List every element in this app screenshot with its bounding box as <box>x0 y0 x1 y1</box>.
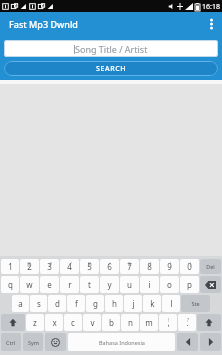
button[interactable]: j <box>124 295 142 312</box>
staticText: u <box>127 279 132 290</box>
staticText: a <box>18 298 23 309</box>
staticText: 6 <box>107 261 112 272</box>
button[interactable]: l <box>162 295 180 312</box>
staticText: , <box>167 317 170 328</box>
button[interactable]: m <box>140 314 158 331</box>
button[interactable]: k <box>143 295 161 312</box>
button[interactable]: i <box>140 276 159 293</box>
staticText: j <box>132 298 135 309</box>
button[interactable]: a <box>12 295 29 312</box>
button[interactable]: 8 <box>140 259 159 274</box>
button[interactable]: Emoji <box>45 333 66 351</box>
button[interactable]: Ctrl <box>1 333 21 351</box>
button[interactable]: f <box>67 295 85 312</box>
button[interactable]: 4 <box>60 259 79 274</box>
staticText: SEARCH <box>96 64 127 74</box>
staticText: Ste <box>191 300 200 307</box>
button[interactable]: 0 <box>180 259 199 274</box>
staticText: * <box>149 261 152 267</box>
staticText: 5 <box>87 261 92 272</box>
button[interactable]: Shift <box>197 314 221 331</box>
button[interactable]: e <box>40 276 59 293</box>
staticText: Song Title / Artist <box>75 43 148 55</box>
staticText: Del <box>206 263 215 270</box>
button[interactable]: Song Title / Artist <box>4 40 218 57</box>
staticText: Ctrl <box>6 339 16 346</box>
button[interactable]: Backspace <box>200 276 221 293</box>
staticText: h <box>112 298 117 309</box>
button[interactable]: p <box>180 276 199 293</box>
button[interactable]: More options <box>200 13 222 35</box>
button[interactable]: 5 <box>80 259 99 274</box>
staticText: ! <box>168 317 170 323</box>
staticText: g <box>93 298 98 309</box>
button[interactable]: u <box>120 276 139 293</box>
staticText: q <box>8 279 13 290</box>
staticText: ? <box>187 317 189 323</box>
staticText: 3 <box>47 261 52 272</box>
button[interactable]: z <box>26 314 44 331</box>
staticText: 1 <box>8 261 13 272</box>
button[interactable]: y <box>100 276 119 293</box>
button[interactable]: Sym <box>23 333 43 351</box>
staticText: p <box>187 279 192 290</box>
staticText: f <box>75 298 78 309</box>
button[interactable]: v <box>83 314 101 331</box>
button[interactable]: 2 <box>20 259 39 274</box>
button[interactable]: Shift <box>1 314 25 331</box>
staticText: e <box>47 279 52 290</box>
button[interactable]: r <box>60 276 79 293</box>
button[interactable]: Move right <box>200 333 221 351</box>
staticText: @ <box>27 261 32 267</box>
button[interactable]: c <box>64 314 82 331</box>
button[interactable]: 6 <box>100 259 119 274</box>
staticText: 8 <box>147 261 152 272</box>
staticText: x <box>52 317 57 328</box>
button[interactable]: d <box>48 295 66 312</box>
button[interactable]: n <box>121 314 139 331</box>
button[interactable]: Del <box>200 259 221 274</box>
staticText: ) <box>190 261 192 267</box>
button[interactable]: 1 <box>1 259 19 274</box>
staticText: k <box>150 298 155 309</box>
staticText: 4 <box>67 261 72 272</box>
staticText: l <box>170 298 173 309</box>
staticText: t <box>88 279 91 290</box>
staticText: i <box>148 279 151 290</box>
button[interactable]: o <box>160 276 179 293</box>
button[interactable]: 7 <box>120 259 139 274</box>
button[interactable]: Ste <box>181 295 210 312</box>
button[interactable]: Move left <box>177 333 198 351</box>
button[interactable]: g <box>86 295 104 312</box>
staticText: Sym <box>28 339 39 346</box>
button[interactable]: . <box>178 314 196 331</box>
staticText: 16:18 <box>202 2 220 11</box>
staticText: 7 <box>127 261 132 272</box>
staticText: z <box>33 317 37 328</box>
button[interactable]: t <box>80 276 99 293</box>
staticText: & <box>128 261 132 267</box>
button[interactable]: b <box>102 314 120 331</box>
staticText: d <box>55 298 60 309</box>
staticText: m <box>145 317 153 328</box>
button[interactable]: 9 <box>160 259 179 274</box>
staticText: % <box>88 261 92 267</box>
button[interactable]: Bahasa Indonesia <box>68 333 175 351</box>
staticText: ^ <box>109 261 112 267</box>
staticText: c <box>71 317 75 328</box>
button[interactable]: SEARCH <box>4 61 218 76</box>
staticText: Fast Mp3 Dwnld <box>9 18 78 30</box>
staticText: # <box>49 261 52 267</box>
staticText: / <box>70 261 72 267</box>
button[interactable]: x <box>45 314 63 331</box>
button[interactable]: q <box>1 276 19 293</box>
staticText: s <box>37 298 41 309</box>
button[interactable]: 3 <box>40 259 59 274</box>
staticText: r <box>68 279 72 290</box>
button[interactable]: s <box>30 295 47 312</box>
staticText: 2 <box>27 261 32 272</box>
button[interactable]: , <box>159 314 177 331</box>
button[interactable]: h <box>105 295 123 312</box>
button[interactable]: w <box>20 276 39 293</box>
staticText: . <box>186 317 189 328</box>
